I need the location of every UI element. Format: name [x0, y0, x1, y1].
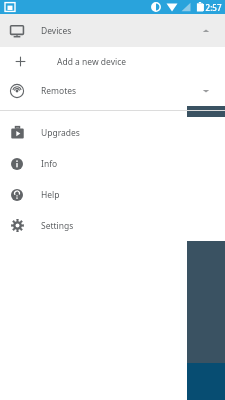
staticText: Remotes: [41, 85, 77, 97]
button[interactable]: Info: [0, 148, 225, 179]
button[interactable]: Settings: [0, 210, 225, 241]
button[interactable]: Upgrades: [0, 117, 225, 148]
button[interactable]: Remotes: [0, 76, 225, 106]
button[interactable]: Devices: [0, 14, 225, 47]
button[interactable]: Help: [0, 179, 225, 210]
button[interactable]: Add a new device: [0, 47, 225, 76]
staticText: Add a new device: [57, 56, 127, 68]
staticText: Info: [41, 158, 58, 170]
staticText: Upgrades: [41, 127, 80, 139]
staticText: Devices: [41, 25, 72, 37]
staticText: Settings: [41, 220, 74, 232]
button[interactable]: Voice search: [187, 14, 225, 52]
staticText: Help: [41, 189, 60, 201]
staticText: 12:57: [201, 2, 222, 13]
